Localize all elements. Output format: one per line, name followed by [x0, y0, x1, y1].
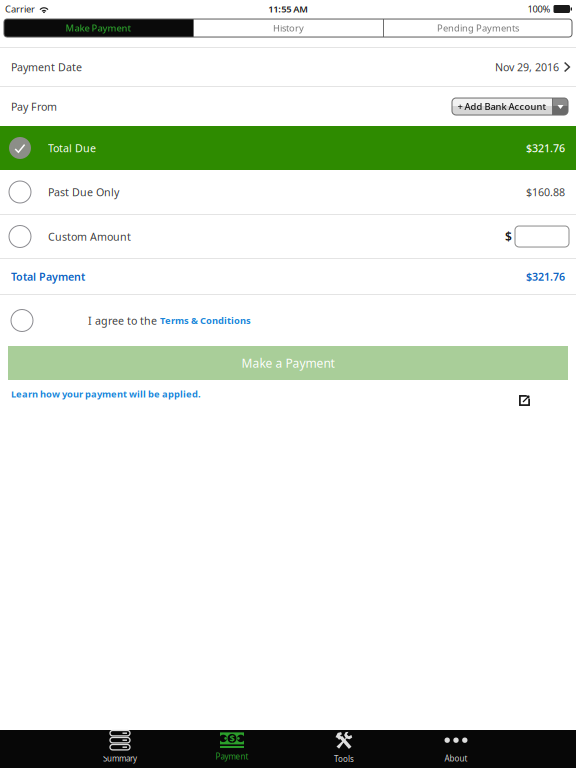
staticText: + Add Bank Account — [457, 100, 546, 113]
staticText: Payment Date — [11, 60, 82, 74]
button[interactable]: Learn how your payment will be applied. — [11, 388, 201, 400]
button[interactable]: Pending Payments — [384, 19, 572, 37]
staticText: Carrier — [5, 3, 35, 15]
button[interactable]: Terms & Conditions — [160, 314, 251, 327]
button[interactable]: $ — [176, 730, 288, 768]
button[interactable]: Past Due Only — [0, 170, 576, 214]
staticText: $321.76 — [526, 269, 565, 284]
staticText: Pay From — [11, 99, 57, 114]
staticText: Summary — [103, 753, 137, 764]
staticText: Payment — [215, 751, 248, 762]
staticText: Custom Amount — [48, 229, 131, 244]
button[interactable]: + Add Bank Account — [452, 98, 568, 115]
button[interactable]: Custom amount field — [515, 226, 569, 247]
button[interactable]: Agree to terms — [11, 309, 33, 331]
staticText: Nov 29, 2016 — [495, 60, 559, 74]
button[interactable]: Summary — [64, 730, 176, 768]
button[interactable]: About — [400, 730, 512, 768]
staticText: $160.88 — [526, 185, 565, 199]
staticText: Pending Payments — [437, 22, 519, 34]
button[interactable]: Tools — [288, 730, 400, 768]
button[interactable]: Custom Amount — [9, 225, 131, 247]
staticText: Make Payment — [65, 22, 131, 34]
staticText: Total Due — [48, 141, 96, 155]
staticText: About — [444, 753, 467, 764]
staticText: History — [273, 22, 304, 34]
button[interactable]: History — [194, 19, 383, 37]
staticText: Total Payment — [11, 269, 85, 284]
staticText: Make a Payment — [241, 355, 334, 371]
button[interactable]: Total Due — [0, 126, 576, 170]
staticText: $321.76 — [526, 141, 565, 155]
button[interactable]: Open in new window — [519, 382, 530, 406]
staticText: 11:55 AM — [268, 3, 308, 15]
staticText: 100% — [527, 3, 550, 15]
button[interactable]: Make Payment — [4, 19, 193, 37]
button[interactable]: Make a Payment — [8, 346, 568, 380]
button[interactable]: Payment Date — [0, 48, 576, 86]
staticText: Past Due Only — [48, 185, 119, 199]
staticText: Tools — [334, 754, 354, 764]
staticText: Terms & Conditions — [160, 314, 251, 327]
staticText: Learn how your payment will be applied. — [11, 388, 201, 400]
staticText: I agree to the — [88, 313, 160, 328]
staticText: $ — [229, 732, 234, 745]
staticText: $ — [505, 228, 512, 244]
